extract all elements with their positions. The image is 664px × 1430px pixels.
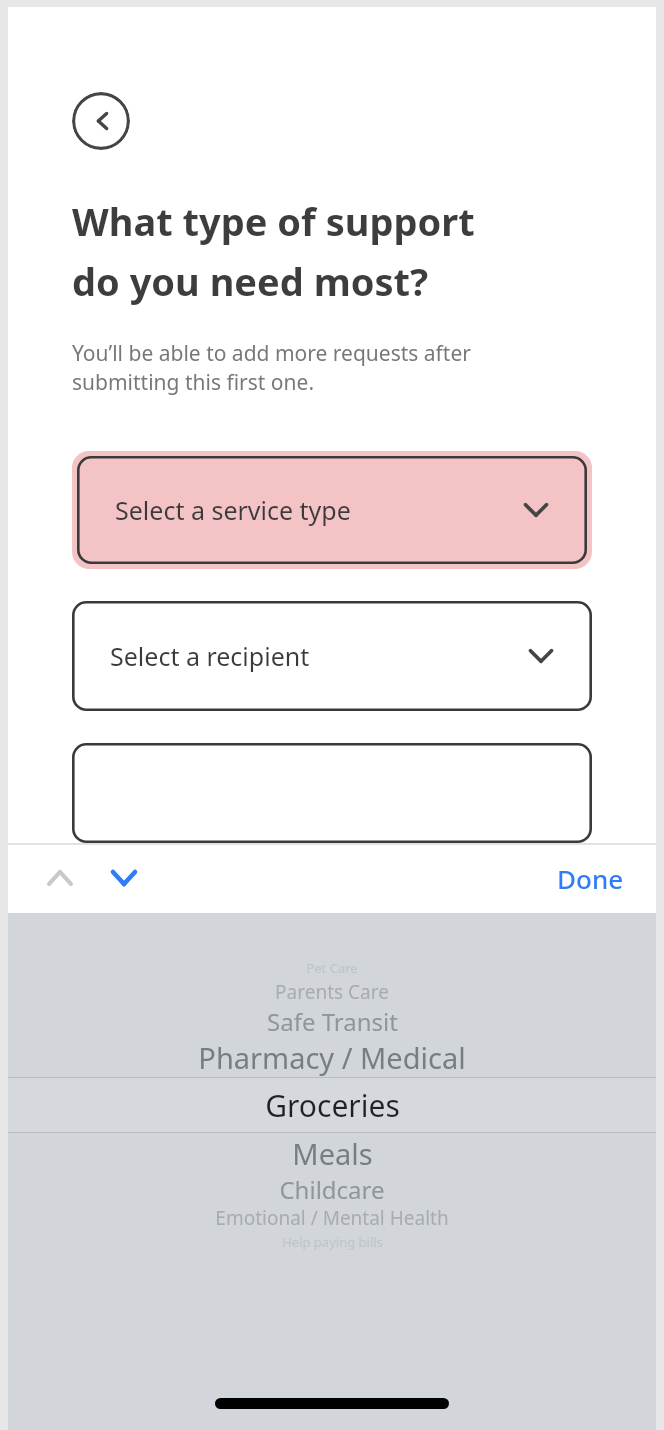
button[interactable]: Select a service type [77,456,587,564]
staticText: do you need most? [72,255,429,307]
button[interactable] [72,743,592,843]
staticText: Safe Transit [267,1005,398,1037]
button[interactable]: Meals [8,1133,656,1173]
staticText: submitting this first one. [72,368,315,397]
button[interactable]: Select a recipient [72,601,592,711]
button[interactable]: Parents Care [8,979,656,1005]
button[interactable]: Childcare [8,1173,656,1205]
staticText: Select a recipient [110,639,310,673]
button[interactable]: Pharmacy / Medical [8,1037,656,1077]
staticText: Pharmacy / Medical [198,1038,466,1077]
button[interactable]: Back [72,92,130,150]
button[interactable]: Done [549,855,632,902]
staticText: Pet Care [306,959,358,977]
staticText: Select a service type [115,493,351,527]
staticText: Parents Care [275,979,389,1005]
button[interactable]: Safe Transit [8,1005,656,1037]
staticText: Childcare [279,1173,385,1205]
button[interactable]: Emotional / Mental Health [8,1205,656,1231]
staticText: Help paying bills [282,1233,383,1251]
button[interactable]: Previous field [34,852,86,904]
button[interactable]: Next field [98,852,150,904]
staticText: Groceries [265,1085,400,1126]
staticText: You’ll be able to add more requests afte… [72,339,471,368]
staticText: Emotional / Mental Health [215,1205,449,1231]
staticText: Meals [292,1134,373,1173]
staticText: What type of support [72,195,475,247]
staticText: Done [557,861,624,896]
